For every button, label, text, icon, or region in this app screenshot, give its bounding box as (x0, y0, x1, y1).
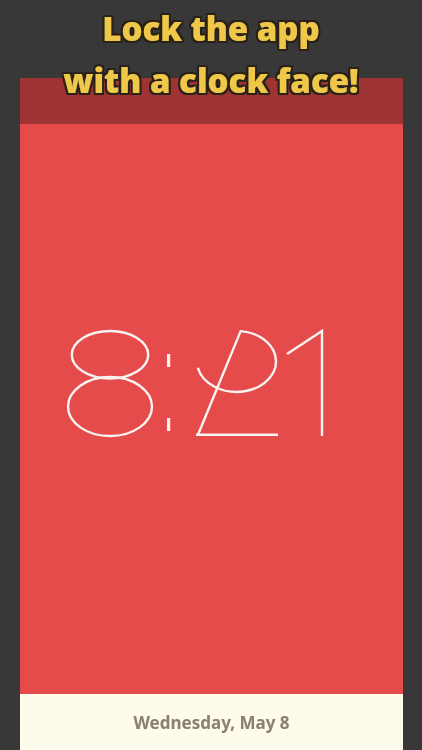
button[interactable]: Lock screen clock 8:21 (20, 124, 403, 694)
staticText: Lock the app (0, 4, 420, 49)
staticText: Lock the app (0, 8, 421, 53)
staticText: with a clock face! (0, 56, 420, 101)
staticText: Lock the app (0, 8, 422, 53)
staticText: with a clock face! (1, 56, 422, 101)
staticText: Lock the app (0, 8, 420, 53)
staticText: Lock the app (0, 5, 422, 50)
staticText: with a clock face! (2, 57, 422, 102)
staticText: Lock the app (1, 5, 422, 50)
staticText: with a clock face! (0, 59, 421, 104)
staticText: with a clock face! (2, 59, 422, 104)
staticText: Lock the app (0, 7, 421, 52)
staticText: with a clock face! (1, 57, 422, 102)
staticText: Lock the app (0, 7, 420, 52)
staticText: with a clock face! (1, 60, 422, 105)
button[interactable]: Wednesday, May 8 (20, 694, 403, 750)
staticText: Lock the app (0, 6, 420, 51)
staticText: Lock the app (0, 4, 422, 49)
staticText: Lock the app (0, 7, 422, 52)
staticText: Lock the app (0, 6, 422, 51)
staticText: Lock the app (1, 8, 422, 53)
staticText: Lock the app (1, 4, 422, 49)
staticText: with a clock face! (1, 59, 422, 104)
staticText: with a clock face! (0, 57, 422, 102)
staticText: with a clock face! (2, 58, 422, 103)
staticText: with a clock face! (0, 57, 421, 102)
staticText: Wednesday, May 8 (20, 711, 403, 734)
staticText: Lock the app (2, 6, 422, 51)
staticText: Lock the app (2, 5, 422, 50)
staticText: Lock the app (1, 7, 422, 52)
staticText: with a clock face! (0, 58, 420, 103)
staticText: with a clock face! (1, 58, 422, 103)
staticText: with a clock face! (0, 60, 420, 105)
staticText: with a clock face! (0, 56, 421, 101)
staticText: with a clock face! (0, 58, 421, 103)
staticText: with a clock face! (0, 56, 422, 101)
staticText: Lock the app (2, 8, 422, 53)
staticText: with a clock face! (0, 57, 420, 102)
staticText: with a clock face! (0, 58, 422, 103)
staticText: Lock the app (0, 5, 421, 50)
staticText: Lock the app (2, 4, 422, 49)
staticText: with a clock face! (2, 56, 422, 101)
staticText: with a clock face! (0, 60, 422, 105)
staticText: Lock the app (0, 4, 421, 49)
staticText: with a clock face! (2, 60, 422, 105)
staticText: with a clock face! (0, 60, 421, 105)
staticText: with a clock face! (0, 59, 422, 104)
staticText: Lock the app (1, 6, 422, 51)
staticText: Lock the app (2, 7, 422, 52)
staticText: Lock the app (0, 6, 421, 51)
staticText: with a clock face! (0, 59, 420, 104)
staticText: Lock the app (0, 5, 420, 50)
